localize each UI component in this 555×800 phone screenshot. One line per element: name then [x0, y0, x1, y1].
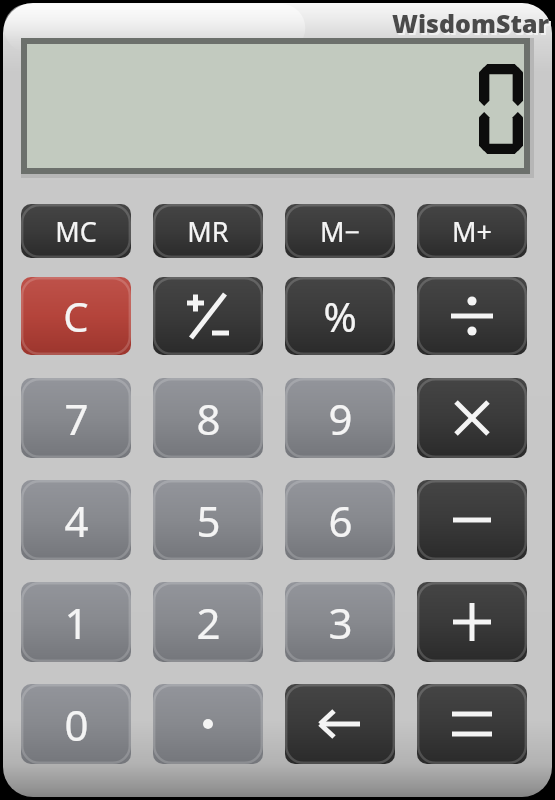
staticText: M+: [452, 213, 492, 250]
button[interactable]: Divide: [417, 277, 527, 355]
staticText: 6: [328, 492, 353, 549]
staticText: 4: [64, 492, 89, 549]
staticText: M−: [320, 213, 360, 250]
button[interactable]: 9: [285, 378, 395, 458]
staticText: 0: [64, 696, 89, 753]
button[interactable]: Subtract: [417, 480, 527, 560]
staticText: WisdomStar: [394, 8, 552, 42]
button[interactable]: C: [21, 277, 131, 355]
button[interactable]: 2: [153, 582, 263, 662]
button[interactable]: Add: [417, 582, 527, 662]
button[interactable]: 3: [285, 582, 395, 662]
button[interactable]: M−: [285, 204, 395, 258]
button[interactable]: 0: [21, 684, 131, 764]
staticText: 8: [196, 390, 221, 447]
button[interactable]: 8: [153, 378, 263, 458]
button[interactable]: M+: [417, 204, 527, 258]
button[interactable]: Backspace: [285, 684, 395, 764]
staticText: C: [63, 289, 89, 343]
staticText: 2: [196, 594, 221, 651]
button[interactable]: MC: [21, 204, 131, 258]
staticText: 1: [64, 594, 89, 651]
staticText: 3: [328, 594, 353, 651]
button[interactable]: 4: [21, 480, 131, 560]
button[interactable]: Multiply: [417, 378, 527, 458]
button[interactable]: Equals: [417, 684, 527, 764]
button[interactable]: 1: [21, 582, 131, 662]
staticText: 7: [64, 390, 89, 447]
button[interactable]: 7: [21, 378, 131, 458]
button[interactable]: 5: [153, 480, 263, 560]
button[interactable]: %: [285, 277, 395, 355]
button[interactable]: Plus minus: [153, 277, 263, 355]
staticText: 9: [328, 390, 353, 447]
button[interactable]: Decimal point: [153, 684, 263, 764]
staticText: WisdomStar: [392, 6, 550, 40]
staticText: MR: [187, 213, 229, 250]
staticText: 5: [196, 492, 221, 549]
staticText: %: [323, 289, 357, 343]
button[interactable]: 6: [285, 480, 395, 560]
button[interactable]: MR: [153, 204, 263, 258]
staticText: MC: [55, 213, 97, 250]
